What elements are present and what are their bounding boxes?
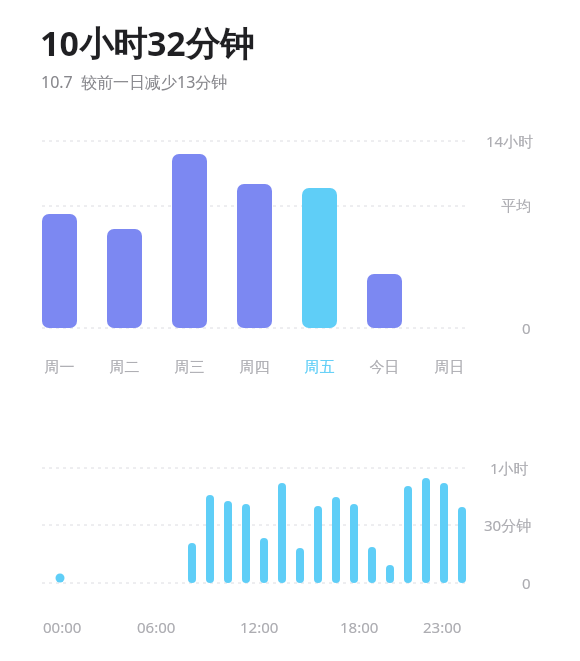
button[interactable]: Sleep duration chart	[0, 0, 580, 661]
